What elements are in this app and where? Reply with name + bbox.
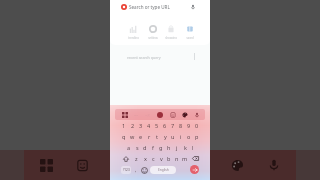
button[interactable]: m <box>181 153 189 164</box>
button[interactable]: p <box>193 131 201 142</box>
button[interactable]: y <box>161 131 169 142</box>
staticText: c <box>152 155 155 162</box>
button[interactable]: o <box>185 131 193 142</box>
button[interactable]: i <box>177 131 185 142</box>
staticText: trending <box>128 36 139 39</box>
staticText: 8 <box>179 122 183 129</box>
staticText: d <box>143 144 147 151</box>
staticText: 3 <box>139 122 143 129</box>
staticText: g <box>159 144 163 151</box>
staticText: f <box>152 144 154 151</box>
button[interactable]: 9 <box>185 120 193 131</box>
button[interactable]: b <box>165 153 173 164</box>
staticText: q <box>122 133 126 140</box>
button[interactable]: f <box>149 142 157 153</box>
staticText: settings <box>148 36 158 39</box>
button[interactable]: e <box>137 131 145 142</box>
staticText: s <box>136 144 139 151</box>
button[interactable]: Voice input <box>261 152 287 178</box>
button[interactable]: Search or type URL <box>110 0 210 13</box>
button[interactable]: settings <box>144 25 162 39</box>
staticText: English <box>158 168 169 172</box>
button[interactable]: Symbols <box>121 166 131 174</box>
button[interactable]: trending <box>124 25 142 39</box>
button[interactable]: w <box>128 131 137 142</box>
button[interactable]: , <box>132 166 139 174</box>
staticText: v <box>160 155 163 162</box>
staticText: 9 <box>187 122 191 129</box>
button[interactable]: Emoji <box>140 166 148 174</box>
staticText: h <box>167 144 171 151</box>
button[interactable]: recent search query <box>110 45 210 59</box>
button[interactable]: Backspace <box>189 153 201 164</box>
staticText: recent search query <box>127 55 161 60</box>
staticText: k <box>184 144 187 151</box>
button[interactable] <box>180 109 189 120</box>
staticText: 7 <box>171 122 175 129</box>
button[interactable]: u <box>169 131 177 142</box>
button[interactable]: 5 <box>153 120 161 131</box>
staticText: t <box>156 133 158 140</box>
staticText: x <box>144 155 147 162</box>
staticText: n <box>175 155 179 162</box>
button[interactable]: d <box>141 142 149 153</box>
staticText: , <box>135 167 137 173</box>
button[interactable]: v <box>157 153 165 164</box>
button[interactable]: Stickers <box>69 152 95 178</box>
staticText: r <box>148 133 151 140</box>
button[interactable]: Keyboards <box>33 152 59 178</box>
button[interactable]: 1 <box>119 120 128 131</box>
staticText: w <box>130 133 135 140</box>
staticText: GIF <box>134 113 138 116</box>
staticText: Search or type URL <box>129 4 170 10</box>
staticText: b <box>167 155 171 162</box>
button[interactable]: g <box>157 142 165 153</box>
button[interactable]: saved <box>181 25 199 39</box>
button[interactable]: a <box>124 142 133 153</box>
button[interactable]: c <box>149 153 157 164</box>
button[interactable]: shopping <box>162 25 180 39</box>
button[interactable]: Shift <box>119 153 132 164</box>
staticText: z <box>135 155 138 162</box>
button[interactable]: 6 <box>161 120 169 131</box>
button[interactable]: k <box>181 142 189 153</box>
button[interactable]: j <box>173 142 181 153</box>
button[interactable]: 7 <box>169 120 177 131</box>
button[interactable]: x <box>141 153 149 164</box>
button[interactable]: h <box>165 142 173 153</box>
button[interactable]: 3 <box>137 120 145 131</box>
button[interactable]: 4 <box>145 120 153 131</box>
staticText: 5 <box>155 122 159 129</box>
staticText: a <box>127 144 131 151</box>
staticText: 2 <box>131 122 135 129</box>
button[interactable]: 2 <box>128 120 137 131</box>
button[interactable] <box>192 109 201 120</box>
button[interactable]: Space <box>150 166 176 174</box>
staticText: 1 <box>122 122 126 129</box>
button[interactable]: s <box>133 142 141 153</box>
staticText: l <box>192 144 194 151</box>
staticText: shopping <box>165 36 177 39</box>
button[interactable]: l <box>189 142 197 153</box>
button[interactable]: Go <box>190 165 199 174</box>
staticText: e <box>139 133 143 140</box>
staticText: saved <box>186 36 194 39</box>
button[interactable]: r <box>145 131 153 142</box>
button[interactable]: z <box>132 153 141 164</box>
button[interactable]: 0 <box>193 120 201 131</box>
staticText: y <box>164 133 167 140</box>
staticText: i <box>180 133 182 140</box>
button[interactable]: q <box>119 131 128 142</box>
button[interactable] <box>155 109 164 120</box>
staticText: p <box>195 133 199 140</box>
staticText: ?123 <box>123 168 130 172</box>
button[interactable]: 8 <box>177 120 185 131</box>
button[interactable]: Themes <box>224 152 250 178</box>
button[interactable]: n <box>173 153 181 164</box>
button[interactable] <box>120 109 129 120</box>
button[interactable] <box>168 109 177 120</box>
button[interactable]: t <box>153 131 161 142</box>
